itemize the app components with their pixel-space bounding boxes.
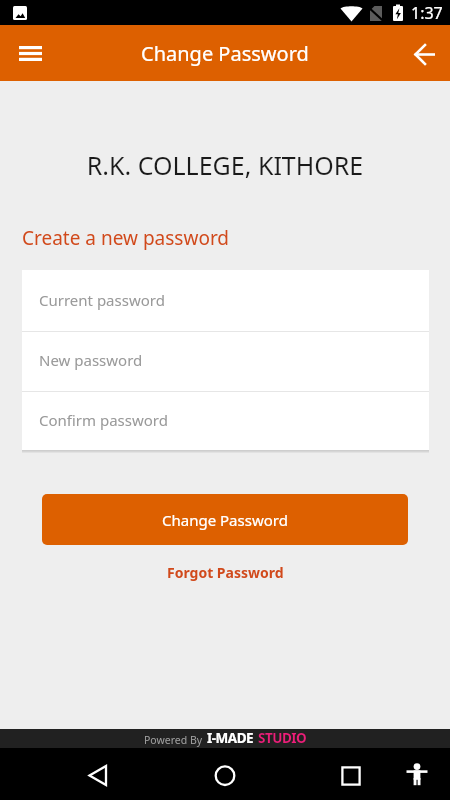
staticText: R.K. COLLEGE, KITHORE <box>0 148 450 182</box>
staticText: STUDIO <box>258 729 307 747</box>
staticText: Change Password <box>162 510 288 530</box>
button[interactable]: Menu <box>6 29 54 77</box>
staticText: I-MADE <box>207 729 254 747</box>
staticText: 1:37 <box>411 2 443 24</box>
staticText: Current password <box>39 290 165 310</box>
button[interactable]: Back <box>60 748 136 800</box>
staticText: Powered By <box>144 733 203 747</box>
button[interactable]: Accessibility <box>392 748 442 800</box>
button[interactable]: New password <box>22 332 429 391</box>
staticText: New password <box>39 350 143 370</box>
button[interactable]: Back <box>394 25 450 81</box>
button[interactable]: Forgot Password <box>161 560 290 585</box>
staticText: Confirm password <box>39 410 168 430</box>
button[interactable]: Confirm password <box>22 392 429 450</box>
button[interactable]: Current password <box>22 270 429 331</box>
staticText: Create a new password <box>22 225 230 251</box>
button[interactable]: Home <box>187 748 263 800</box>
button[interactable]: Recents <box>313 748 389 800</box>
staticText: Change Password <box>141 40 309 67</box>
button[interactable]: Change Password <box>42 494 408 545</box>
